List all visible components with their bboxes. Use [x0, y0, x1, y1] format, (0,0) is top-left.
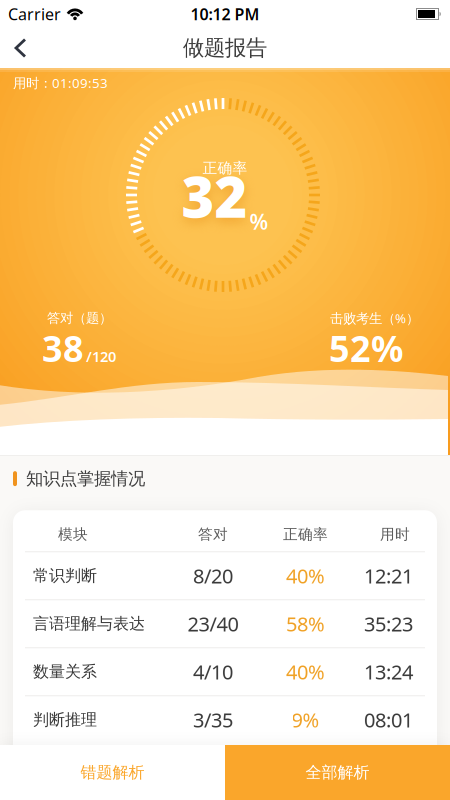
staticText: 错题解析 [80, 763, 144, 782]
staticText: Carrier [8, 3, 61, 25]
staticText: 答对 [198, 525, 228, 543]
staticText: 用时：01:09:53 [13, 74, 108, 92]
staticText: 23/40 [187, 610, 238, 637]
staticText: 12:21 [364, 562, 413, 589]
staticText: 52% [329, 324, 403, 372]
staticText: 35:23 [364, 610, 413, 637]
staticText: 模块 [58, 525, 88, 543]
staticText: 8/20 [193, 562, 233, 589]
staticText: 10:12 PM [190, 3, 259, 25]
staticText: 击败考生（%） [330, 309, 419, 327]
staticText: 38 [42, 324, 84, 372]
staticText: 数量关系 [33, 662, 97, 682]
staticText: 知识点掌握情况 [26, 468, 145, 489]
staticText: 40% [286, 562, 325, 589]
staticText: 全部解析 [305, 763, 369, 782]
staticText: 正确率 [283, 525, 328, 543]
staticText: 常识判断 [33, 566, 97, 586]
staticText: 08:01 [364, 706, 413, 733]
staticText: 3/35 [193, 706, 233, 733]
staticText: 判断推理 [33, 710, 97, 730]
staticText: 4/10 [193, 658, 233, 685]
button[interactable]: 全部解析 [225, 745, 450, 800]
staticText: 32 [181, 159, 247, 233]
staticText: 答对（题） [47, 310, 112, 326]
staticText: 9% [291, 706, 319, 733]
staticText: 言语理解与表达 [33, 614, 145, 634]
staticText: 40% [286, 658, 325, 685]
staticText: 58% [286, 610, 325, 637]
button[interactable]: 错题解析 [0, 745, 225, 800]
button[interactable]: Back [0, 28, 28, 67]
staticText: 正确率 [202, 159, 247, 177]
staticText: 做题报告 [183, 35, 267, 61]
staticText: % [249, 207, 268, 236]
staticText: 用时 [380, 525, 410, 543]
staticText: /120 [86, 346, 116, 366]
staticText: 13:24 [364, 658, 413, 685]
